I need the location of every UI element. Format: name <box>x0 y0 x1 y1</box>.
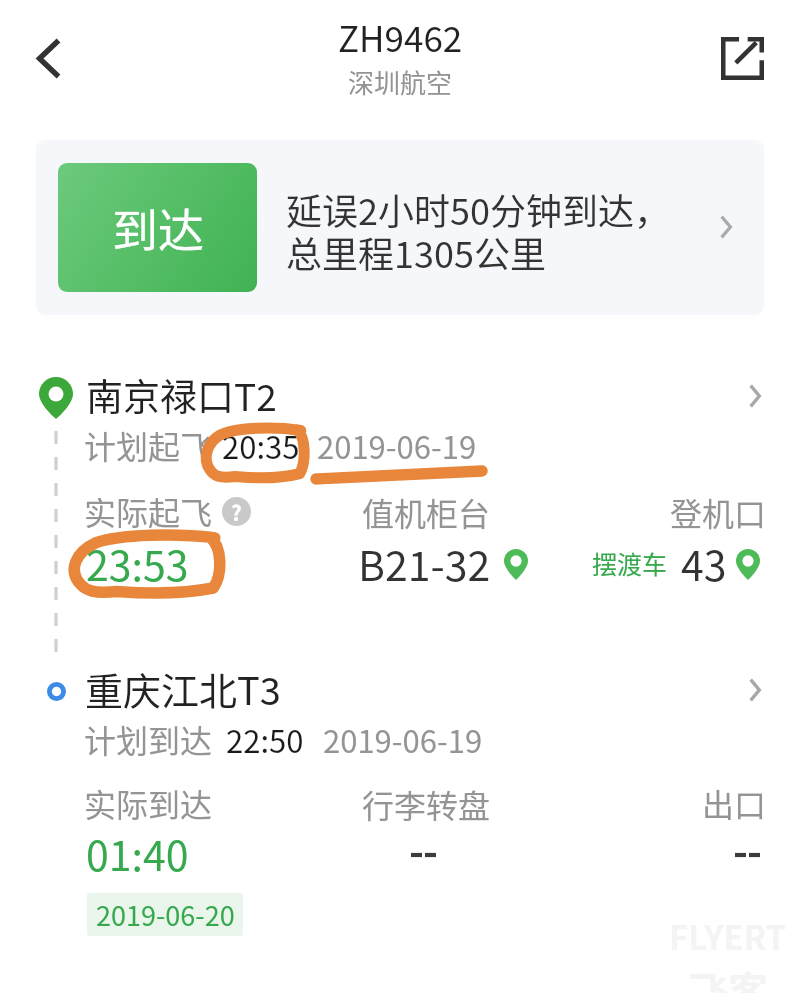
staticText: 出口 <box>702 780 767 826</box>
staticText: 2019-06-19 <box>323 717 483 762</box>
staticText: 重庆江北T3 <box>85 661 281 716</box>
staticText: 飞客 <box>688 960 768 993</box>
staticText: 登机口 <box>670 489 767 535</box>
staticText: B21-32 <box>358 533 491 592</box>
button[interactable]: Back <box>14 23 84 93</box>
staticText: 43 <box>681 533 727 592</box>
button[interactable]: Share <box>707 23 777 93</box>
staticText: 延误2小时50分钟到达， <box>286 183 670 235</box>
staticText: 20:35 <box>222 423 300 468</box>
staticText: 计划起飞 <box>84 422 213 468</box>
button[interactable] <box>36 664 764 716</box>
staticText: 值机柜台 <box>362 489 491 535</box>
staticText: 22:50 <box>226 717 304 762</box>
staticText: 23:53 <box>86 533 189 592</box>
staticText: 深圳航空 <box>348 63 453 101</box>
staticText: 摆渡车 <box>592 545 668 581</box>
staticText: ZH9462 <box>338 11 463 62</box>
staticText: 总里程1305公里 <box>286 226 546 278</box>
staticText: 实际到达 <box>84 780 213 826</box>
staticText: FLYERT <box>669 912 787 960</box>
staticText: 2019-06-20 <box>96 895 235 934</box>
staticText: 到达 <box>112 194 204 261</box>
staticText: 01:40 <box>86 823 189 882</box>
staticText: ? <box>231 497 242 526</box>
staticText: 2019-06-19 <box>317 423 477 468</box>
staticText: 南京禄口T2 <box>86 368 277 422</box>
staticText: 实际起飞 <box>84 488 213 534</box>
button[interactable]: 到达 <box>36 140 764 315</box>
button[interactable]: Help <box>222 497 251 526</box>
button[interactable] <box>36 366 764 422</box>
staticText: 行李转盘 <box>362 781 491 827</box>
staticText: 计划到达 <box>84 716 213 762</box>
